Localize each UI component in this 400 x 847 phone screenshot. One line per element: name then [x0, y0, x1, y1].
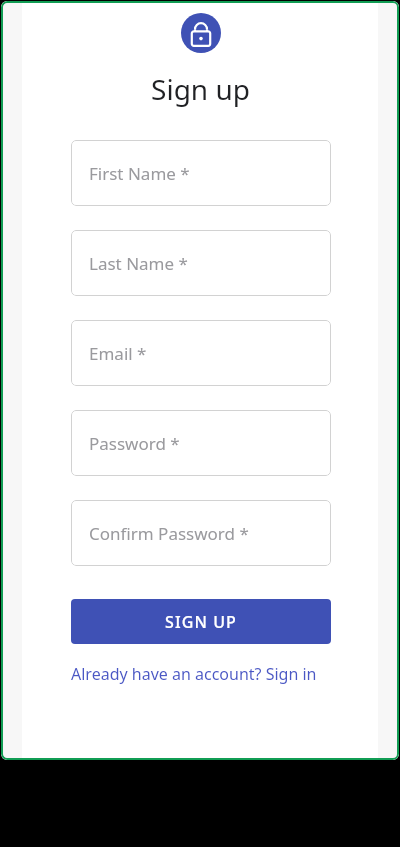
staticText: Confirm Password * [89, 522, 249, 545]
button[interactable]: Email * [71, 320, 331, 386]
staticText: SIGN UP [165, 611, 237, 633]
button[interactable]: Last Name * [71, 230, 331, 296]
button[interactable]: SIGN UP [71, 599, 331, 644]
staticText: Email * [89, 342, 147, 365]
staticText: Sign up [151, 70, 250, 108]
staticText: First Name * [89, 162, 190, 185]
button[interactable]: First Name * [71, 140, 331, 206]
staticText: Last Name * [89, 252, 188, 275]
button[interactable]: Password * [71, 410, 331, 476]
staticText: Already have an account? Sign in [71, 663, 317, 685]
button[interactable]: Confirm Password * [71, 500, 331, 566]
staticText: Password * [89, 432, 180, 455]
button[interactable]: Already have an account? Sign in [71, 663, 323, 685]
other: Lock [181, 13, 221, 53]
